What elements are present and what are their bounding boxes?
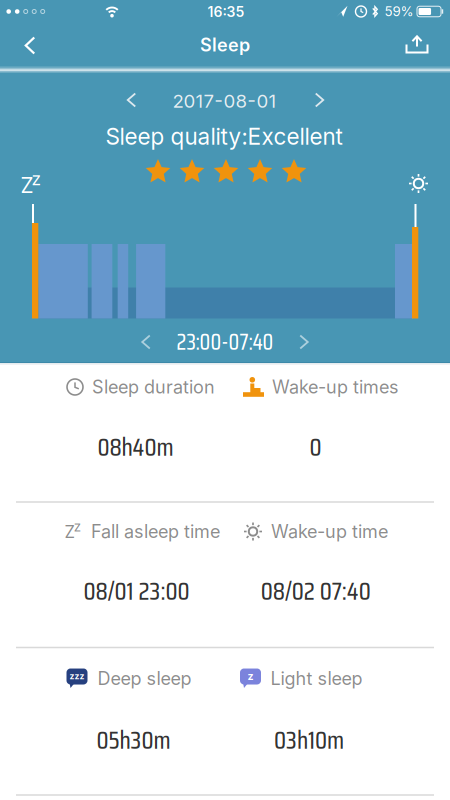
staticText: 03h10m [274, 720, 344, 760]
staticText: 05h30m [97, 720, 171, 760]
staticText: 16:35 [207, 3, 244, 20]
staticText: Sleep [200, 34, 250, 56]
staticText: zzz [69, 671, 84, 681]
staticText: Sleep quality:Excellent [105, 123, 342, 150]
staticText: z [247, 669, 253, 682]
button[interactable]: Share [0, 0, 44, 44]
staticText: Sleep duration [92, 376, 215, 398]
staticText: Fall asleep time [91, 521, 220, 542]
staticText: Z [20, 173, 33, 198]
button[interactable]: Next day [0, 0, 36, 36]
staticText: Deep sleep [97, 668, 191, 689]
staticText: 08h40m [97, 427, 173, 467]
staticText: 0 [310, 427, 322, 467]
staticText: z [74, 519, 81, 535]
button[interactable]: Next range [0, 0, 36, 36]
staticText: z [32, 168, 42, 189]
staticText: Z [64, 522, 74, 542]
staticText: 2017-08-01 [172, 90, 276, 112]
button[interactable]: Back [0, 0, 44, 44]
staticText: Wake-up time [271, 521, 388, 542]
button[interactable]: Previous range [0, 0, 36, 36]
staticText: Wake-up times [272, 376, 399, 398]
staticText: 08/02 07:40 [261, 571, 371, 611]
staticText: 08/01 23:00 [84, 571, 190, 611]
staticText: Light sleep [270, 668, 362, 689]
button[interactable]: Previous day [0, 0, 36, 36]
staticText: 59% [384, 3, 413, 19]
staticText: 23:00-07:40 [176, 325, 273, 359]
